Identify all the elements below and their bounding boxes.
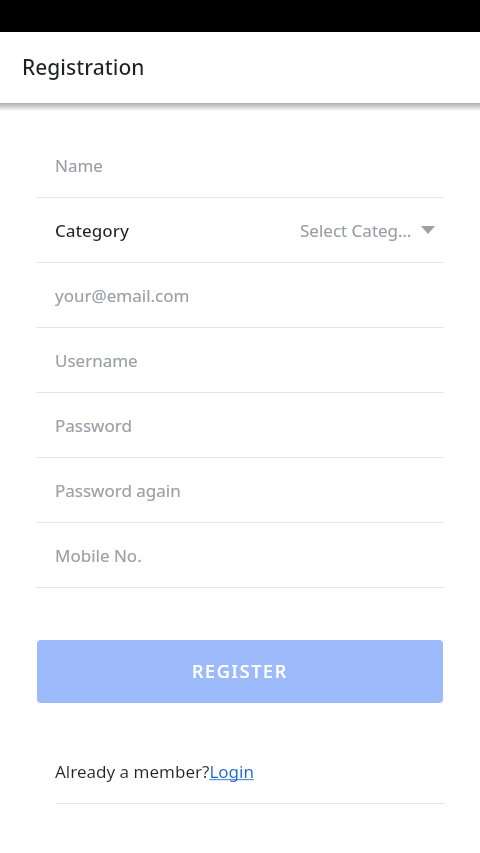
staticText: your@email.com: [55, 284, 190, 307]
staticText: Password: [55, 414, 132, 437]
button[interactable]: REGISTER: [37, 640, 443, 703]
button[interactable]: Category: [36, 198, 444, 263]
staticText: Registration: [22, 53, 145, 82]
staticText: REGISTER: [192, 659, 288, 684]
button[interactable]: Username: [36, 328, 444, 393]
staticText: Already a member?Login: [55, 760, 254, 783]
button[interactable]: Name: [36, 133, 444, 198]
button[interactable]: Password again: [36, 458, 444, 523]
staticText: Name: [55, 154, 103, 177]
staticText: Username: [55, 349, 138, 372]
button[interactable]: Password: [36, 393, 444, 458]
button[interactable]: your@email.com: [36, 263, 444, 328]
staticText: Mobile No.: [55, 544, 142, 567]
button[interactable]: Mobile No.: [36, 523, 444, 588]
staticText: Category: [55, 219, 129, 242]
staticText: Select Categ…: [300, 219, 412, 242]
button[interactable]: Already a member?Login: [55, 760, 254, 783]
other: Select category: [412, 198, 444, 262]
staticText: Password again: [55, 479, 181, 502]
